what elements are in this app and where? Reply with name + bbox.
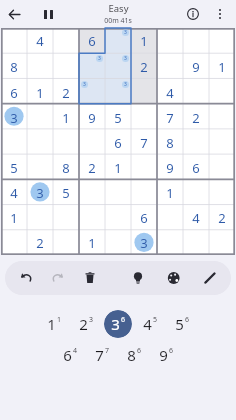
staticText: Easy [108, 2, 129, 15]
staticText: 6 [88, 32, 96, 50]
staticText: 2 [88, 159, 96, 177]
button[interactable]: More options [206, 0, 234, 28]
staticText: 4 [10, 184, 18, 202]
staticText: 1 [218, 58, 226, 76]
staticText: 3 [111, 314, 120, 334]
staticText: 7 [166, 109, 174, 127]
button[interactable]: Info [180, 1, 206, 27]
staticText: 4 [192, 209, 200, 227]
staticText: 8 [127, 345, 136, 365]
staticText: 2 [192, 109, 200, 127]
staticText: 3 [36, 184, 44, 202]
staticText: 4 [166, 84, 174, 102]
staticText: 7 [140, 134, 148, 152]
staticText: 3 [89, 315, 94, 325]
staticText: 6 [169, 346, 174, 356]
button[interactable]: 9 [152, 341, 180, 369]
staticText: 5 [62, 184, 70, 202]
button[interactable]: 7 [88, 341, 116, 369]
staticText: 4 [36, 32, 44, 50]
staticText: 4 [143, 314, 152, 334]
staticText: 1 [57, 315, 62, 325]
staticText: 5 [114, 109, 122, 127]
staticText: 9 [88, 109, 96, 127]
staticText: 9 [166, 159, 174, 177]
staticText: 2 [36, 234, 44, 252]
button[interactable]: Erase [77, 265, 103, 291]
button[interactable]: Hint [125, 265, 151, 291]
button[interactable]: 8 [120, 341, 148, 369]
staticText: 4 [73, 346, 78, 356]
staticText: 6 [114, 134, 122, 152]
staticText: 5 [10, 159, 18, 177]
staticText: 6 [63, 345, 72, 365]
staticText: 2 [218, 209, 226, 227]
staticText: 2 [140, 58, 148, 76]
staticText: 6 [140, 209, 148, 227]
staticText: 1 [114, 159, 122, 177]
button[interactable]: 5 [168, 310, 196, 338]
button[interactable]: Back [0, 0, 28, 28]
staticText: 3 [124, 29, 127, 36]
staticText: 6 [10, 84, 18, 102]
staticText: 3 [124, 81, 127, 88]
staticText: 6 [121, 315, 126, 325]
staticText: 9 [192, 58, 200, 76]
staticText: 5 [175, 314, 184, 334]
button[interactable]: Colour [161, 265, 187, 291]
staticText: 1 [166, 184, 174, 202]
staticText: 2 [79, 314, 88, 334]
staticText: 1 [140, 32, 148, 50]
staticText: 00m 41s [104, 16, 132, 26]
staticText: 6 [185, 315, 190, 325]
button[interactable]: 6 [56, 341, 84, 369]
button[interactable]: Pause [34, 0, 62, 28]
staticText: 1 [10, 209, 18, 227]
staticText: 6 [192, 159, 200, 177]
button[interactable]: Sudoku board [1, 28, 235, 255]
staticText: 1 [47, 314, 56, 334]
staticText: 8 [62, 159, 70, 177]
staticText: 1 [88, 234, 96, 252]
staticText: 3 [140, 234, 148, 252]
button[interactable]: Redo [45, 265, 71, 291]
staticText: 3 [83, 81, 86, 88]
staticText: 3 [124, 55, 127, 62]
button[interactable]: Pencil notes [197, 265, 223, 291]
staticText: 6 [137, 346, 142, 356]
staticText: 1 [62, 109, 70, 127]
staticText: 3 [98, 55, 101, 62]
button[interactable]: Undo [13, 265, 39, 291]
button[interactable]: 1 [40, 310, 68, 338]
button[interactable]: 4 [136, 310, 164, 338]
staticText: 3 [10, 109, 18, 127]
button[interactable]: 3 [104, 310, 132, 338]
button[interactable]: 2 [72, 310, 100, 338]
staticText: 5 [153, 315, 158, 325]
staticText: 1 [36, 84, 44, 102]
staticText: 2 [62, 84, 70, 102]
staticText: 7 [105, 346, 110, 356]
staticText: 7 [95, 345, 104, 365]
staticText: 8 [166, 134, 174, 152]
staticText: 9 [159, 345, 168, 365]
staticText: 8 [10, 58, 18, 76]
